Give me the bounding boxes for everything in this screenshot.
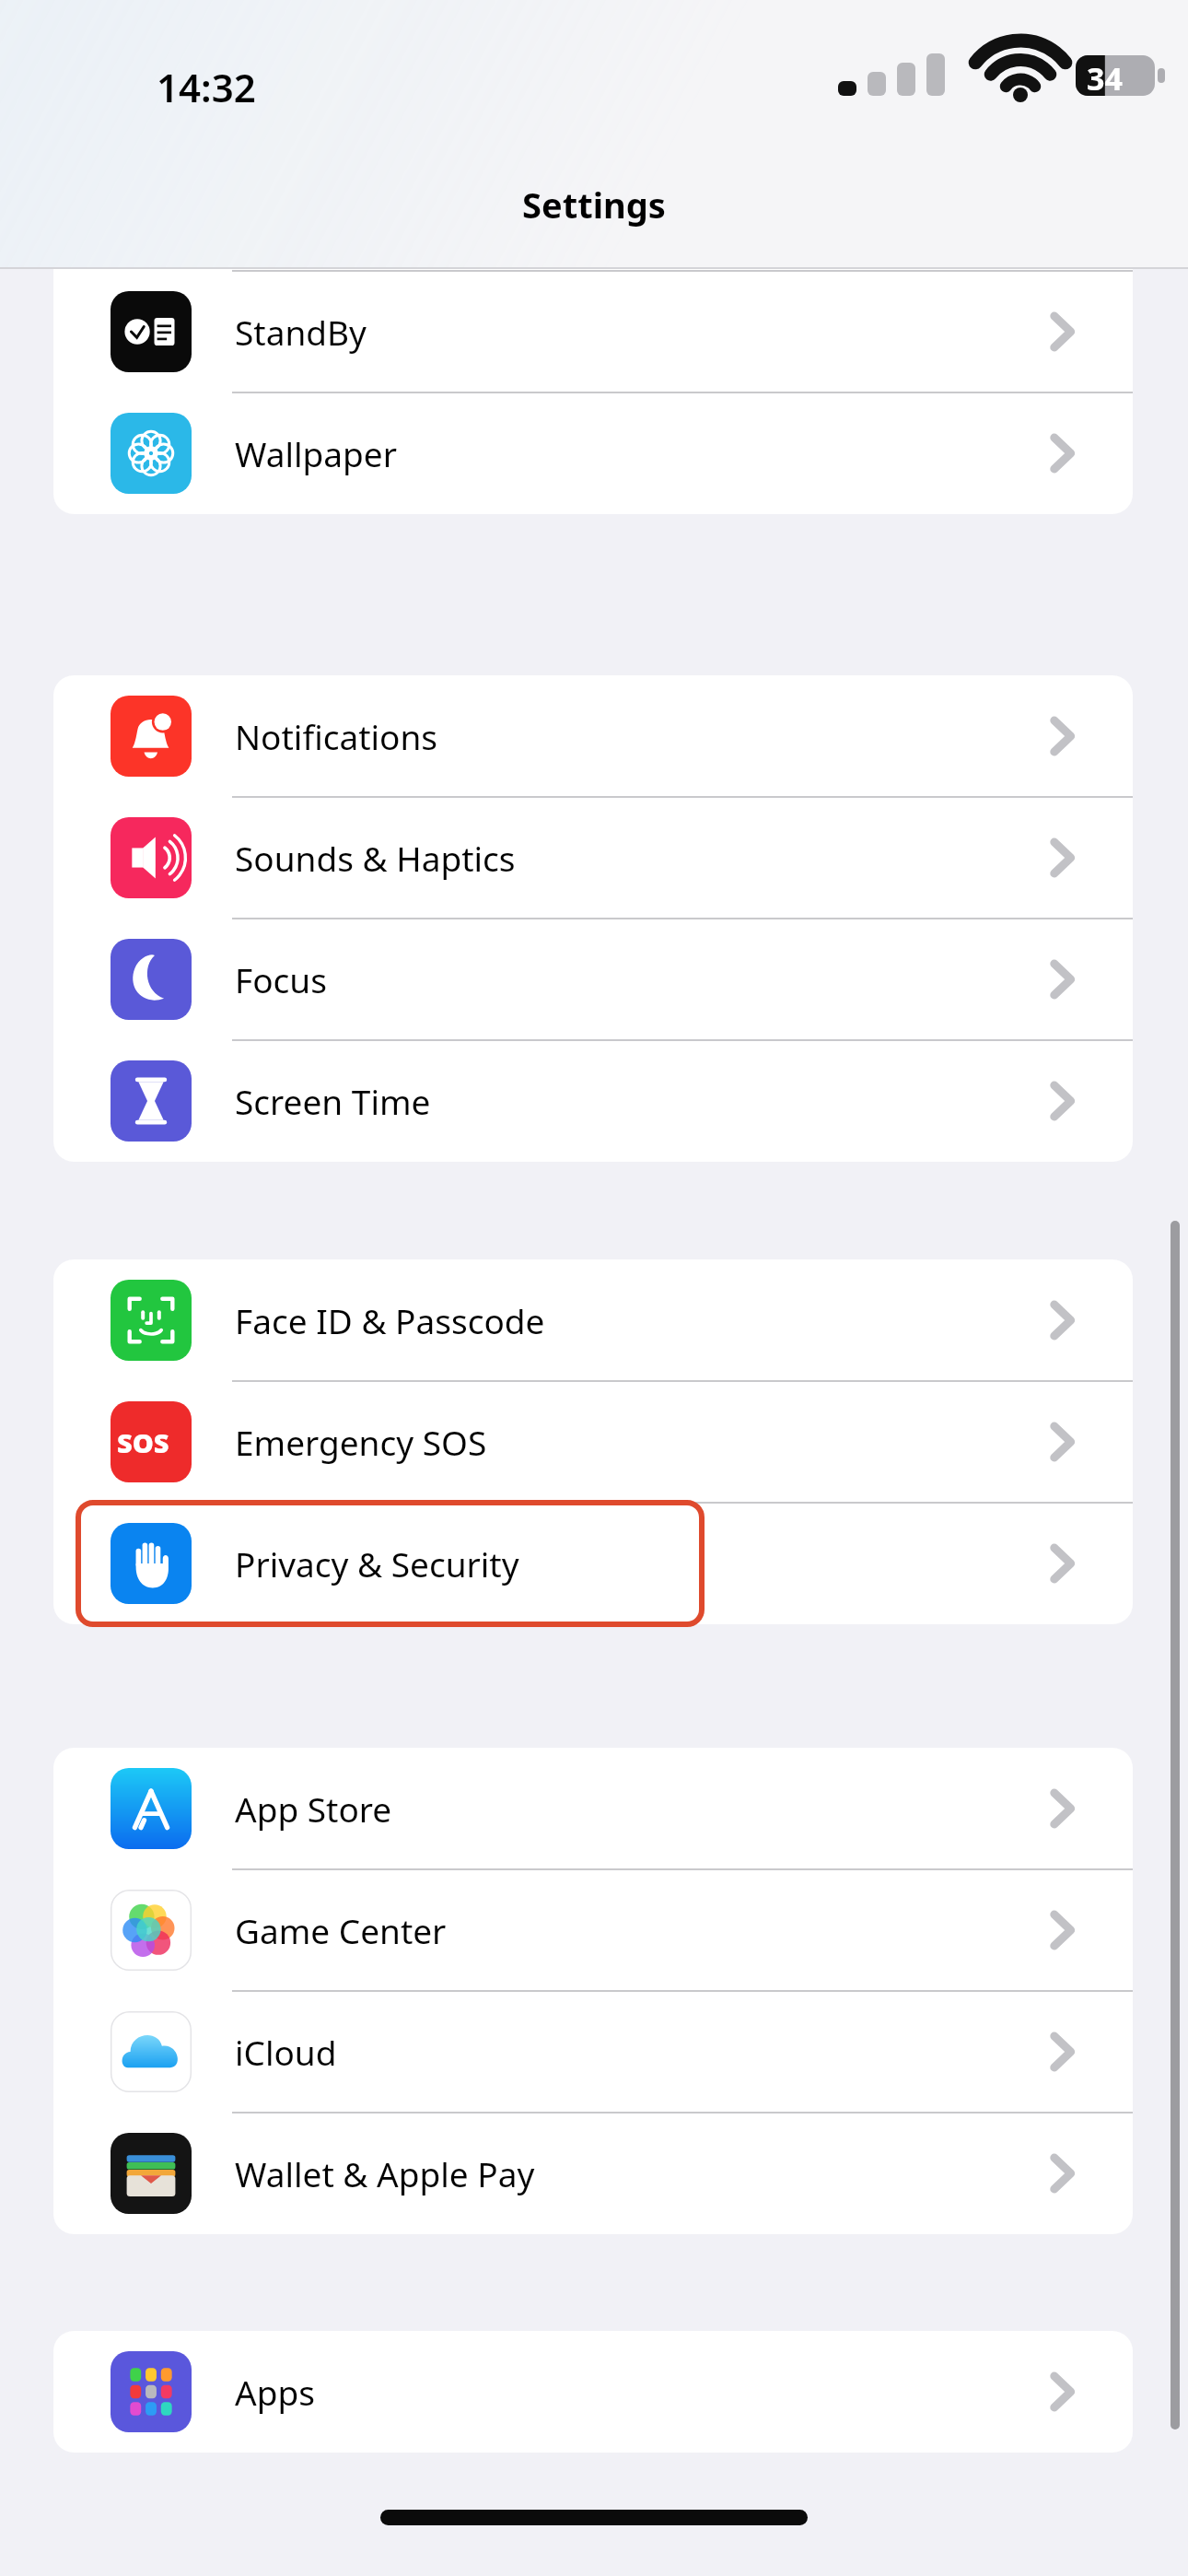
button[interactable]: iCloud	[53, 1991, 1133, 2113]
button[interactable]: Wallpaper	[53, 392, 1133, 514]
button[interactable]: Sounds & Haptics	[53, 797, 1133, 919]
button[interactable]: StandBy	[53, 271, 1133, 392]
staticText: Focus	[235, 956, 327, 1002]
button[interactable]: Apps	[53, 2331, 1133, 2453]
staticText: StandBy	[235, 309, 367, 355]
button[interactable]: Focus	[53, 919, 1133, 1040]
button[interactable]: Game Center	[53, 1869, 1133, 1991]
button[interactable]: Screen Time	[53, 1040, 1133, 1162]
staticText: Privacy & Security	[235, 1540, 519, 1587]
staticText: Settings	[522, 181, 666, 228]
staticText: iCloud	[235, 2029, 337, 2075]
staticText: SOS	[117, 1424, 169, 1460]
button[interactable]: Wallet & Apple Pay	[53, 2113, 1133, 2234]
staticText: 34	[1087, 57, 1123, 100]
staticText: 14:32	[157, 61, 256, 113]
staticText: Emergency SOS	[235, 1419, 487, 1465]
staticText: Screen Time	[235, 1078, 431, 1124]
staticText: Game Center	[235, 1907, 447, 1953]
button[interactable]: App Store	[53, 1748, 1133, 1869]
staticText: Wallpaper	[235, 430, 397, 476]
button[interactable]: Face ID & Passcode	[53, 1259, 1133, 1381]
button[interactable]: Privacy & Security	[53, 1503, 1133, 1624]
staticText: Apps	[235, 2369, 315, 2415]
staticText: App Store	[235, 1786, 392, 1832]
staticText: Face ID & Passcode	[235, 1297, 545, 1343]
staticText: Wallet & Apple Pay	[235, 2150, 535, 2196]
button[interactable]: Notifications	[53, 675, 1133, 797]
staticText: Notifications	[235, 713, 438, 759]
button[interactable]: Siri	[53, 149, 1133, 271]
button[interactable]: SOS	[53, 1381, 1133, 1503]
staticText: Sounds & Haptics	[235, 835, 516, 881]
